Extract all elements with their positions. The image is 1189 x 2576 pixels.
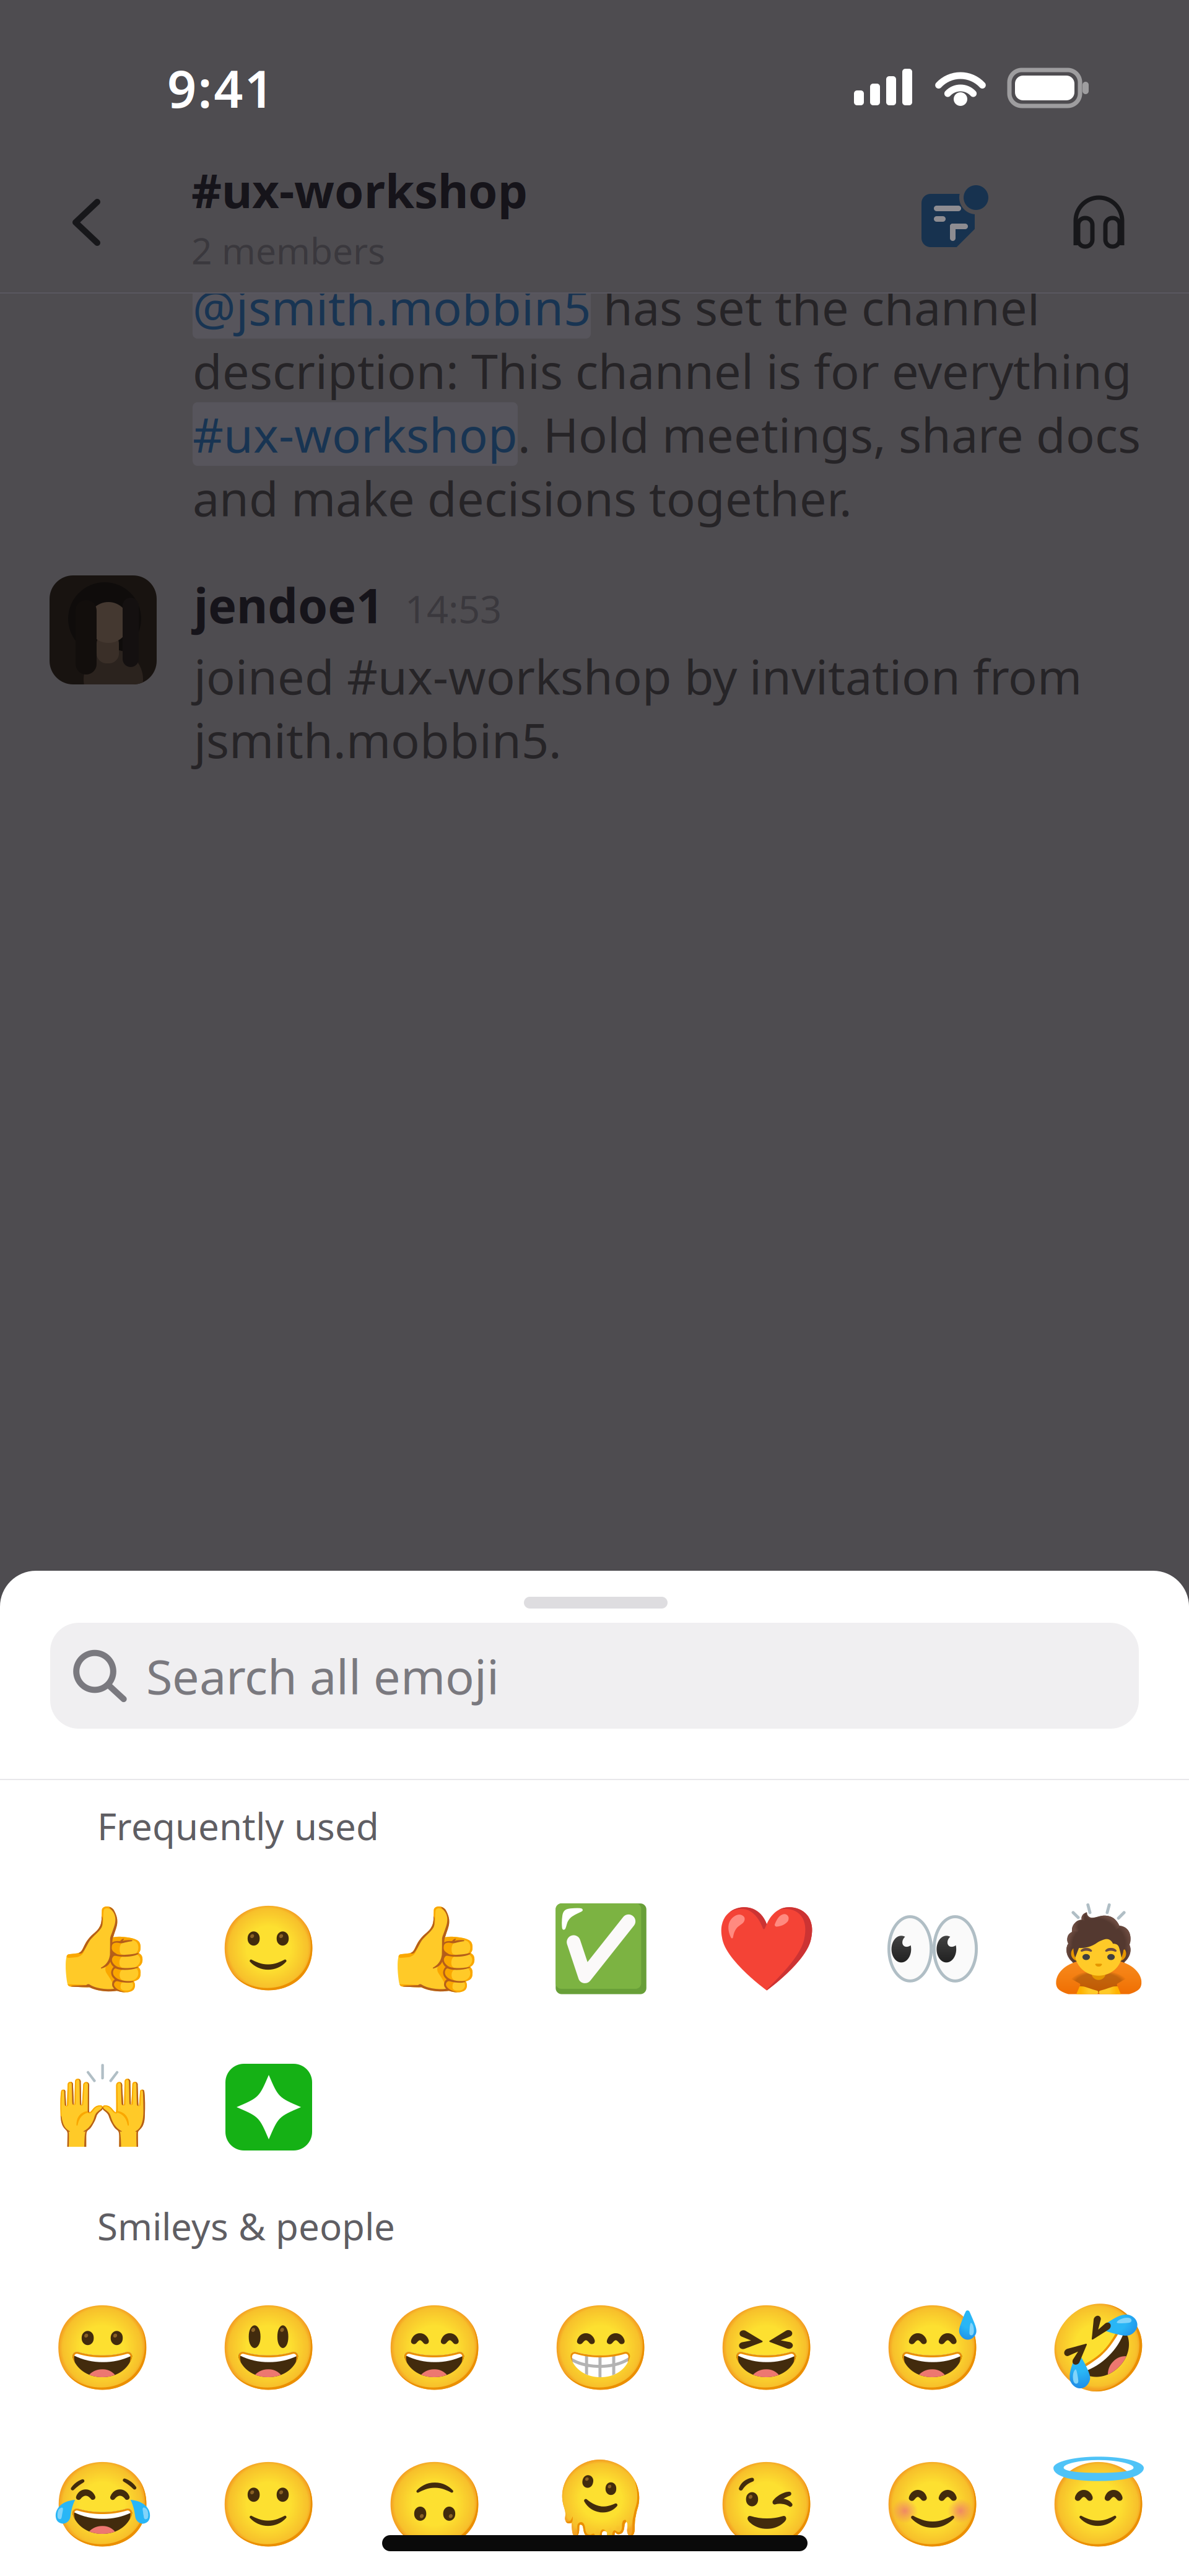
staticText: 😇 bbox=[1047, 2458, 1150, 2552]
staticText: Smileys & people bbox=[97, 2201, 395, 2251]
staticText: #ux-workshop bbox=[193, 402, 518, 466]
button[interactable]: 😅 bbox=[850, 2292, 1016, 2404]
button[interactable]: 😉 bbox=[684, 2449, 850, 2561]
staticText: and make decisions together. bbox=[193, 466, 852, 529]
button[interactable]: 😄 bbox=[352, 2292, 518, 2404]
button[interactable]: 👀 bbox=[850, 1893, 1016, 2004]
button[interactable]: 😆 bbox=[684, 2292, 850, 2404]
staticText: ✅ bbox=[549, 1901, 652, 1996]
staticText: joined #ux-workshop by invitation from bbox=[194, 644, 1082, 708]
button[interactable]: 🫠 bbox=[518, 2449, 684, 2561]
staticText: 😀 bbox=[51, 2301, 154, 2395]
staticText: 🤣 bbox=[1047, 2301, 1150, 2395]
staticText: 14:53 bbox=[405, 583, 502, 634]
staticText: 😆 bbox=[715, 2301, 818, 2395]
staticText: 😄 bbox=[383, 2301, 486, 2395]
staticText: 😃 bbox=[217, 2301, 320, 2395]
staticText: 👍 bbox=[383, 1901, 486, 1996]
staticText: @jsmith.mobbin5 bbox=[193, 275, 591, 339]
button[interactable]: #ux-workshop bbox=[191, 159, 528, 274]
staticText: 👀 bbox=[881, 1901, 984, 1996]
staticText: Search all emoji bbox=[146, 1644, 499, 1708]
staticText: 😊 bbox=[881, 2458, 984, 2552]
staticText: 👍 bbox=[51, 1901, 154, 1996]
staticText: 🫠 bbox=[549, 2458, 652, 2552]
staticText: jendoe1 bbox=[194, 573, 383, 637]
staticText: . Hold meetings, share docs bbox=[518, 402, 1141, 466]
staticText: 😅 bbox=[881, 2301, 984, 2395]
button[interactable]: 👍 bbox=[20, 1893, 186, 2004]
staticText: 😁 bbox=[549, 2301, 652, 2395]
button[interactable]: 😀 bbox=[20, 2292, 186, 2404]
staticText: #ux-workshop bbox=[191, 159, 528, 221]
button[interactable]: Search all emoji bbox=[50, 1623, 1139, 1729]
button[interactable]: 😂 bbox=[20, 2449, 186, 2561]
button[interactable]: 🤣 bbox=[1016, 2292, 1182, 2404]
button[interactable]: 😇 bbox=[1016, 2449, 1182, 2561]
staticText: 🙂 bbox=[217, 1901, 320, 1996]
button[interactable]: 😁 bbox=[518, 2292, 684, 2404]
staticText: 9:41 bbox=[167, 54, 274, 122]
button[interactable]: ✅ bbox=[518, 1893, 684, 2004]
button[interactable]: 😊 bbox=[850, 2449, 1016, 2561]
button[interactable]: 🙂 bbox=[186, 1893, 352, 2004]
button[interactable]: 🙂 bbox=[186, 2449, 352, 2561]
button[interactable]: ❤️ bbox=[684, 1893, 850, 2004]
staticText: 😉 bbox=[715, 2458, 818, 2552]
staticText: 😂 bbox=[51, 2458, 154, 2552]
staticText: has set the channel bbox=[591, 275, 1040, 339]
button[interactable]: 🙌 bbox=[20, 2051, 186, 2163]
staticText: Frequently used bbox=[97, 1801, 379, 1851]
button[interactable]: 👍 bbox=[352, 1893, 518, 2004]
button[interactable]: 😃 bbox=[186, 2292, 352, 2404]
button[interactable]: 🙃 bbox=[352, 2449, 518, 2561]
button[interactable]: Canvas bbox=[921, 184, 988, 247]
staticText: jsmith.mobbin5. bbox=[194, 708, 562, 771]
button[interactable]: 🙇 bbox=[1016, 1893, 1182, 2004]
button[interactable]: Back bbox=[52, 178, 121, 266]
button[interactable]: Huddle bbox=[1074, 196, 1125, 249]
staticText: 🙌 bbox=[51, 2060, 154, 2154]
button[interactable]: Sparkle emoji bbox=[186, 2051, 352, 2163]
staticText: ❤️ bbox=[715, 1901, 818, 1996]
staticText: 🙂 bbox=[217, 2458, 320, 2552]
staticText: 2 members bbox=[191, 226, 385, 274]
staticText: description: This channel is for everyth… bbox=[193, 339, 1132, 402]
staticText: 🙃 bbox=[383, 2458, 486, 2552]
staticText: 🙇 bbox=[1047, 1901, 1150, 1996]
